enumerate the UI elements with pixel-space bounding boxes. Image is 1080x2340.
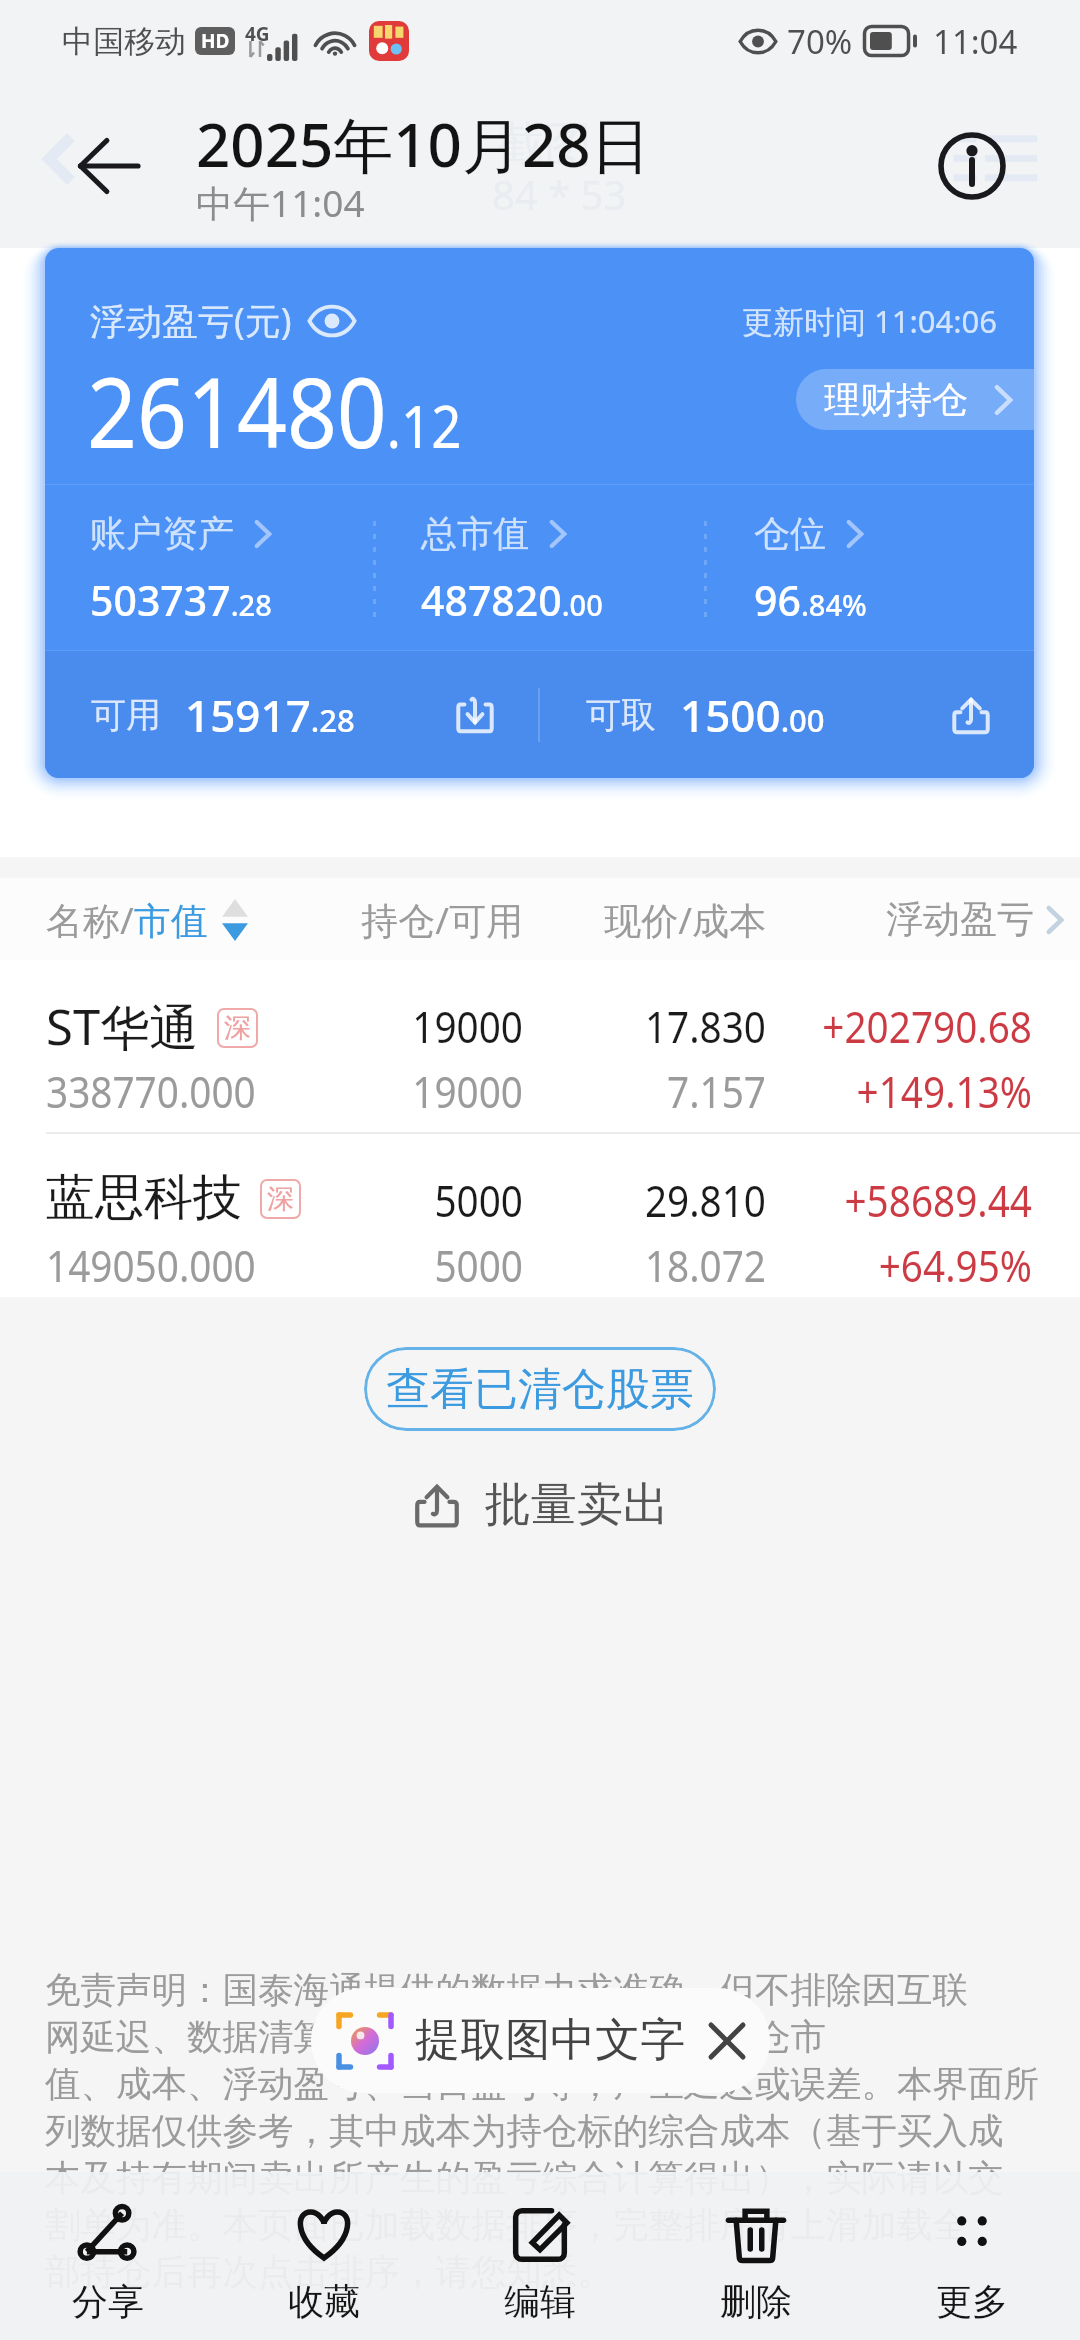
button[interactable]: 理财持仓 bbox=[796, 369, 1034, 430]
staticText: 338770.000 bbox=[46, 1061, 256, 1121]
staticText: HD bbox=[201, 28, 230, 54]
staticText: 29.810 bbox=[484, 1170, 766, 1230]
staticText: 账户资产 bbox=[90, 511, 234, 556]
button[interactable]: Info bbox=[920, 114, 1024, 218]
staticText: 名称/市值 bbox=[46, 894, 208, 945]
button[interactable]: Back bbox=[58, 116, 158, 216]
button[interactable]: 收藏 bbox=[216, 2172, 432, 2340]
staticText: +149.13% bbox=[750, 1061, 1032, 1121]
staticText: 批量卖出 bbox=[485, 1476, 669, 1534]
staticText: 70% bbox=[787, 19, 853, 64]
staticText: 更新时间 11:04:06 bbox=[742, 300, 998, 342]
staticText: 可取 bbox=[586, 693, 656, 737]
staticText: 持仓/可用 bbox=[323, 894, 523, 945]
staticText: 编辑 bbox=[504, 2279, 576, 2324]
staticText: 5000 bbox=[241, 1235, 523, 1295]
staticText: 提取图中文字 bbox=[415, 2012, 685, 2069]
staticText: 中国移动 bbox=[62, 22, 186, 61]
staticText: 中午11:04 bbox=[196, 177, 365, 228]
staticText: 浮动盈亏(元) bbox=[90, 296, 292, 345]
staticText: +64.95% bbox=[750, 1235, 1032, 1295]
staticText: 查看已清仓股票 bbox=[386, 1362, 694, 1417]
staticText: 截图 bbox=[496, 115, 592, 175]
button[interactable]: 蓝思科技 bbox=[0, 1134, 1080, 1297]
button[interactable]: 批量卖出 bbox=[391, 1468, 689, 1542]
staticText: 15917.28 bbox=[185, 685, 355, 745]
button[interactable]: 提取图中文字 bbox=[311, 1988, 770, 2093]
staticText: 84 * 53 bbox=[492, 167, 627, 221]
staticText: 503737.28 bbox=[90, 572, 272, 628]
staticText: 收藏 bbox=[288, 2279, 360, 2324]
staticText: 可用 bbox=[91, 693, 161, 737]
button[interactable]: ST华通 bbox=[0, 960, 1080, 1134]
staticText: 5000 bbox=[241, 1170, 523, 1230]
button[interactable]: 更多 bbox=[864, 2172, 1080, 2340]
staticText: 理财持仓 bbox=[824, 377, 968, 422]
staticText: 深 bbox=[224, 1011, 251, 1045]
staticText: 17.830 bbox=[484, 996, 766, 1056]
staticText: +58689.44 bbox=[750, 1170, 1032, 1230]
button[interactable]: 查看已清仓股票 bbox=[364, 1347, 716, 1431]
staticText: ST华通 bbox=[46, 993, 199, 1060]
staticText: 蓝思科技 bbox=[46, 1167, 242, 1229]
staticText: 现价/成本 bbox=[566, 894, 766, 945]
staticText: 总市值 bbox=[421, 511, 529, 556]
button[interactable]: 转入 bbox=[436, 676, 514, 754]
staticText: 更多 bbox=[936, 2279, 1008, 2324]
button[interactable]: 名称/市值 bbox=[46, 894, 248, 945]
staticText: 261480.12 bbox=[87, 345, 462, 476]
button[interactable]: 分享 bbox=[0, 2172, 216, 2340]
staticText: 487820.00 bbox=[421, 572, 603, 628]
staticText: 2025年10月28日 bbox=[196, 103, 651, 185]
button[interactable]: 转出 bbox=[932, 676, 1010, 754]
staticText: 96.84% bbox=[754, 572, 867, 628]
staticText: 11:04 bbox=[933, 19, 1018, 64]
staticText: 分享 bbox=[72, 2279, 144, 2324]
staticText: 删除 bbox=[720, 2279, 792, 2324]
staticText: 仓位 bbox=[754, 511, 826, 556]
staticText: 18.072 bbox=[484, 1235, 766, 1295]
staticText: 4G bbox=[245, 21, 270, 47]
staticText: 1500.00 bbox=[680, 685, 825, 745]
button[interactable]: 浮动盈亏 bbox=[886, 896, 1064, 943]
staticText: +202790.68 bbox=[750, 996, 1032, 1056]
button[interactable]: 删除 bbox=[648, 2172, 864, 2340]
staticText: 免责声明：国泰海通提供的数据力求准确，但不排除因互联 网延迟、数据清算等原因造成… bbox=[45, 1968, 1055, 2295]
staticText: 7.157 bbox=[484, 1061, 766, 1121]
staticText: 浮动盈亏 bbox=[886, 896, 1034, 943]
staticText: 19000 bbox=[241, 996, 523, 1056]
button[interactable]: 编辑 bbox=[432, 2172, 648, 2340]
staticText: 19000 bbox=[241, 1061, 523, 1121]
staticText: 149050.000 bbox=[46, 1235, 256, 1295]
staticText: 深 bbox=[267, 1182, 294, 1216]
